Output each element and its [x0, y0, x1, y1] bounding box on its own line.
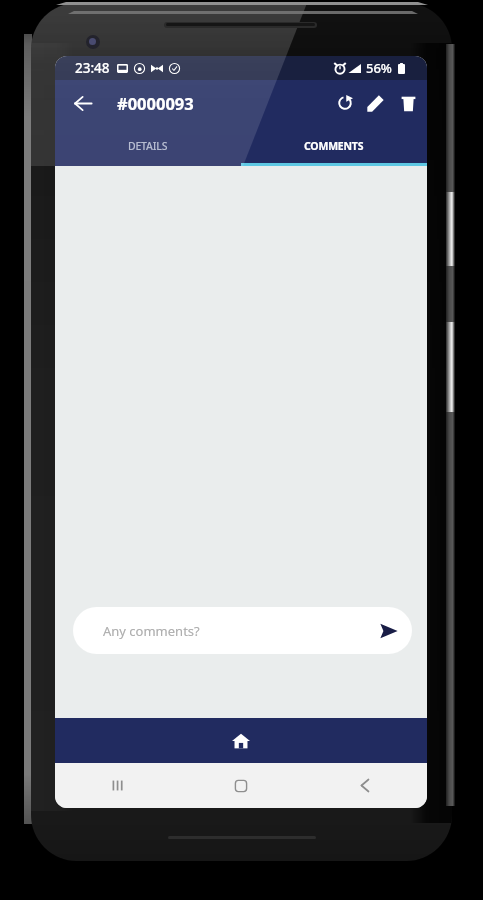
button[interactable]: Delete — [393, 83, 423, 123]
staticText: Any comments? — [103, 622, 200, 640]
button[interactable]: Home — [55, 718, 427, 763]
button[interactable]: COMMENTS — [241, 125, 427, 166]
staticText: DETAILS — [128, 139, 168, 153]
other: Send — [372, 614, 406, 648]
button[interactable]: Any comments? — [73, 607, 412, 654]
staticText: 56% — [366, 59, 392, 77]
staticText: COMMENTS — [304, 139, 364, 153]
button[interactable]: Recent apps — [55, 763, 179, 808]
button[interactable]: DETAILS — [55, 125, 241, 166]
button[interactable]: Back — [303, 763, 427, 808]
button[interactable]: Edit — [360, 83, 390, 123]
staticText: #0000093 — [117, 92, 194, 114]
button[interactable]: Refresh — [330, 83, 360, 123]
button[interactable]: Home — [179, 763, 303, 808]
staticText: 23:48 — [75, 59, 110, 77]
button[interactable]: Back — [64, 84, 102, 122]
